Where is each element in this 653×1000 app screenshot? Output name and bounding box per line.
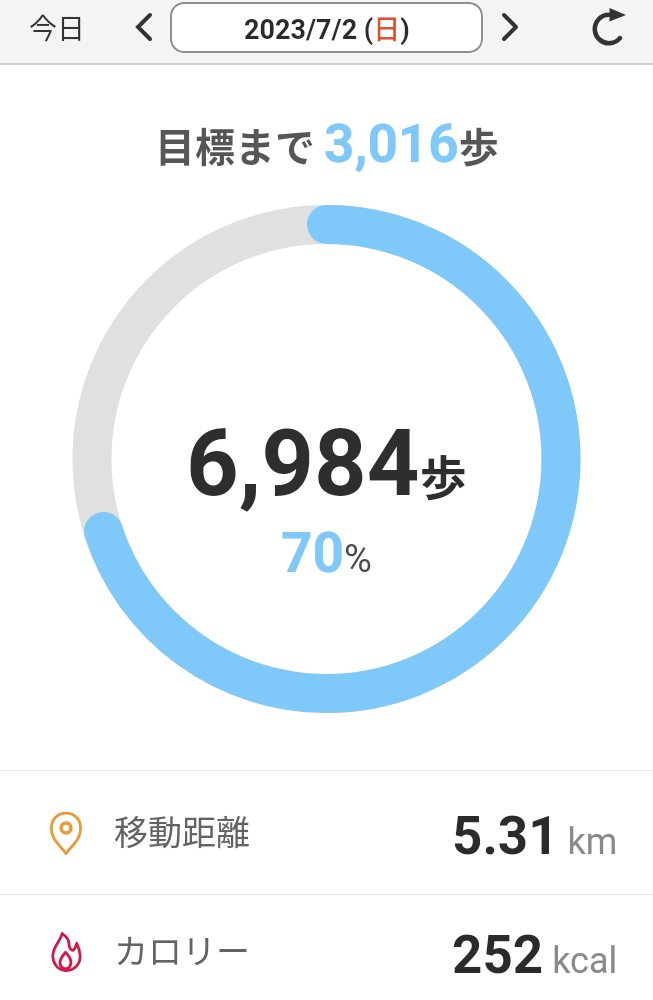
button[interactable]: カロリー xyxy=(0,893,653,1000)
staticText: 6,984歩 xyxy=(186,410,467,518)
button[interactable]: Refresh xyxy=(581,1,637,57)
staticText: 252 kcal xyxy=(452,924,618,986)
staticText: 今日 xyxy=(29,7,86,44)
button[interactable]: Next day xyxy=(483,0,537,54)
staticText: 70% xyxy=(281,521,372,585)
button[interactable]: 今日 xyxy=(9,0,106,58)
staticText: 5.31 km xyxy=(452,805,618,867)
staticText: 2023/7/2 (日) xyxy=(244,8,410,47)
button[interactable]: 2023/7/2 (日) xyxy=(170,2,483,53)
staticText: カロリー xyxy=(114,925,250,974)
staticText: 移動距離 xyxy=(114,806,250,855)
staticText: 目標まで 3,016歩 xyxy=(155,113,499,175)
button[interactable]: 移動距離 xyxy=(0,774,653,897)
button[interactable]: Previous day xyxy=(117,0,171,54)
